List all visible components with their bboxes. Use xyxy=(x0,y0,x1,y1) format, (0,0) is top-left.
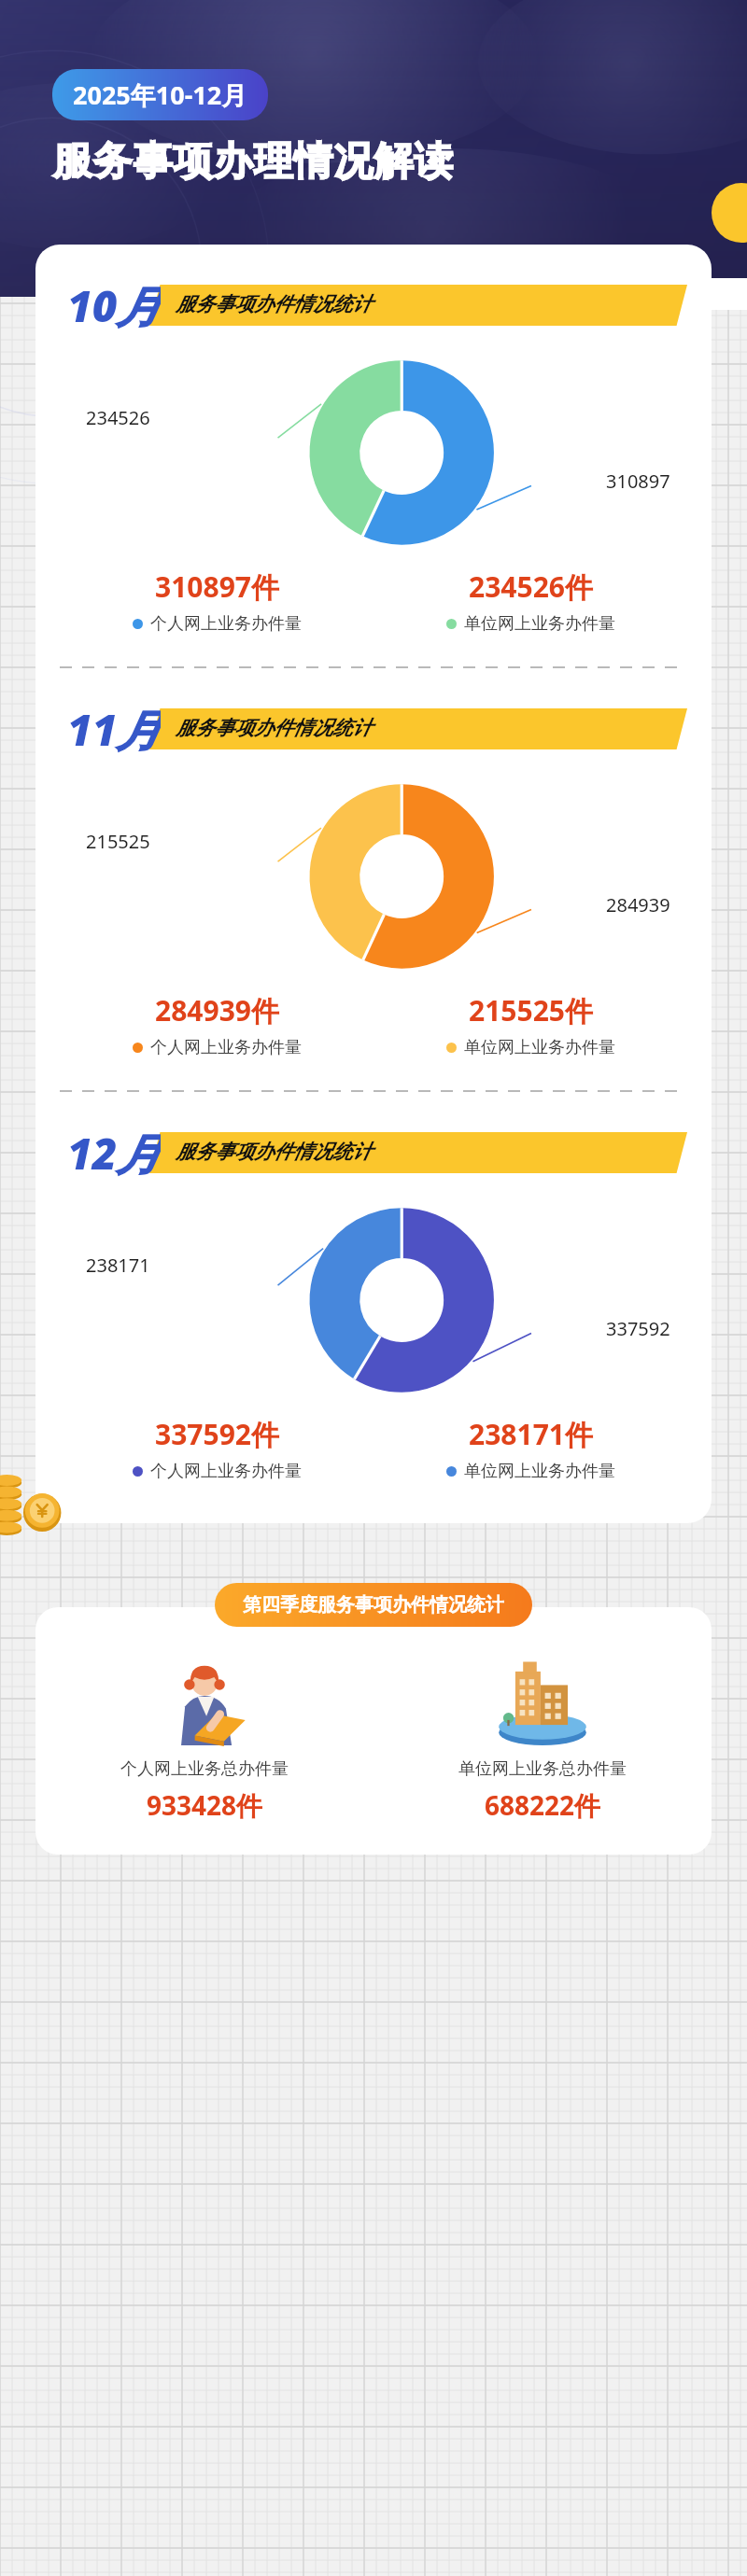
button[interactable]: 第四季度服务事项办件情况统计 xyxy=(215,1583,532,1627)
staticText: 11月 xyxy=(67,700,161,758)
staticText: 284939件 xyxy=(155,991,279,1029)
staticText: 688222件 xyxy=(485,1787,601,1823)
staticText: 单位网上业务办件量 xyxy=(464,1037,615,1058)
staticText: 238171 xyxy=(86,1253,150,1278)
button[interactable]: 2025年10-12月 xyxy=(52,69,268,120)
staticText: 234526件 xyxy=(469,567,593,606)
staticText: 10月 xyxy=(67,276,161,334)
staticText: 2025年10-12月 xyxy=(73,77,247,112)
staticText: 个人网上业务办件量 xyxy=(150,613,302,635)
staticText: 284939 xyxy=(606,892,670,917)
staticText: 215525 xyxy=(86,829,150,854)
button[interactable]: 个人网上业务总办件量 xyxy=(35,1650,373,1823)
staticText: 933428件 xyxy=(147,1787,263,1823)
staticText: 337592件 xyxy=(155,1415,279,1453)
staticText: 个人网上业务总办件量 xyxy=(120,1758,289,1780)
staticText: 310897 xyxy=(606,469,670,494)
staticText: 服务事项办理情况解读 xyxy=(52,137,454,187)
staticText: 238171件 xyxy=(469,1415,593,1453)
staticText: 234526 xyxy=(86,405,150,430)
staticText: 310897件 xyxy=(155,567,279,606)
staticText: 个人网上业务办件量 xyxy=(150,1037,302,1058)
staticText: 单位网上业务办件量 xyxy=(464,1461,615,1482)
staticText: 12月 xyxy=(67,1124,161,1182)
staticText: 单位网上业务办件量 xyxy=(464,613,615,635)
staticText: 服务事项办件情况统计 xyxy=(176,1140,372,1164)
staticText: 337592 xyxy=(606,1316,670,1341)
staticText: 第四季度服务事项办件情况统计 xyxy=(243,1593,504,1617)
staticText: 单位网上业务总办件量 xyxy=(458,1758,627,1780)
staticText: 个人网上业务办件量 xyxy=(150,1461,302,1482)
staticText: 服务事项办件情况统计 xyxy=(176,292,372,316)
button[interactable]: 单位网上业务总办件量 xyxy=(373,1650,712,1823)
staticText: 服务事项办件情况统计 xyxy=(176,716,372,740)
staticText: 215525件 xyxy=(469,991,593,1029)
